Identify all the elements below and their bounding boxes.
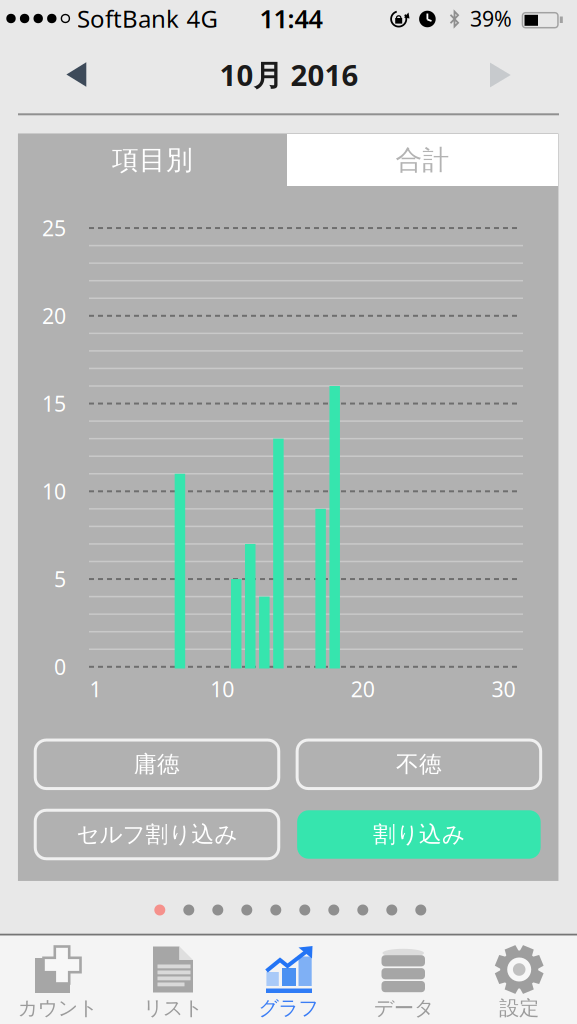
staticText: 項目別 [112, 144, 193, 176]
staticText: 0 [54, 653, 66, 681]
staticText: SoftBank [77, 3, 179, 34]
button[interactable]: データ [346, 936, 462, 1024]
button[interactable]: グラフ [231, 936, 346, 1024]
button[interactable]: 庸徳 [35, 740, 279, 788]
staticText: 1 [89, 675, 101, 703]
button[interactable]: リスト [115, 936, 231, 1024]
staticText: 10 [42, 477, 66, 505]
staticText: 11:44 [259, 2, 322, 35]
staticText: 5 [54, 565, 66, 593]
staticText: 10 [210, 675, 234, 703]
staticText: 20 [351, 675, 375, 703]
button[interactable]: 次の月 [485, 58, 515, 92]
staticText: 30 [491, 675, 515, 703]
staticText: 39% [470, 4, 512, 33]
button[interactable]: 項目別 [18, 134, 287, 186]
button[interactable]: 合計 [287, 134, 558, 186]
staticText: リスト [143, 996, 203, 1020]
button[interactable]: カウント [0, 936, 115, 1024]
staticText: 15 [42, 389, 66, 418]
button[interactable]: 前の月 [61, 57, 91, 91]
staticText: データ [374, 996, 434, 1020]
staticText: グラフ [258, 996, 318, 1020]
staticText: 割り込み [373, 821, 465, 848]
button[interactable]: 割り込み [297, 810, 541, 859]
staticText: 10月 2016 [219, 55, 358, 94]
staticText: 合計 [395, 144, 449, 176]
staticText: 設定 [499, 996, 539, 1020]
button[interactable]: 設定 [462, 936, 577, 1024]
staticText: セルフ割り込み [76, 821, 237, 848]
button[interactable]: セルフ割り込み [35, 810, 279, 859]
staticText: 20 [42, 302, 66, 330]
staticText: 4G [186, 3, 217, 34]
staticText: 25 [42, 214, 66, 242]
staticText: 不徳 [396, 750, 442, 778]
staticText: カウント [18, 996, 98, 1020]
button[interactable]: 不徳 [297, 740, 541, 788]
staticText: 庸徳 [134, 750, 180, 778]
